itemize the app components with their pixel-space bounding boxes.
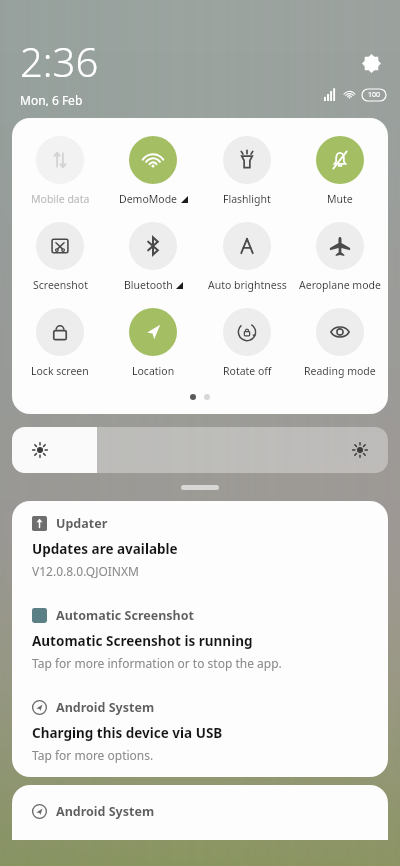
staticText: Mobile data — [31, 192, 90, 206]
button[interactable]: Auto brightness — [202, 222, 292, 292]
staticText: Tap for more information or to stop the … — [32, 655, 282, 671]
button[interactable]: Mobile data — [15, 136, 105, 206]
staticText: Updater — [56, 515, 108, 532]
button[interactable]: Location — [108, 308, 198, 378]
staticText: Reading mode — [304, 364, 376, 378]
button[interactable]: Android System — [12, 685, 388, 777]
staticText: Android System — [56, 699, 155, 716]
staticText: Lock screen — [31, 364, 89, 378]
button[interactable]: Mute — [295, 136, 385, 206]
button[interactable]: Automatic Screenshot — [12, 593, 388, 685]
button[interactable]: Lock screen — [15, 308, 105, 378]
staticText: Rotate off — [223, 364, 272, 378]
staticText: V12.0.8.0.QJOINXM — [32, 563, 139, 579]
button[interactable]: Flashlight — [202, 136, 292, 206]
button[interactable]: Android System — [12, 785, 388, 840]
staticText: Location — [132, 364, 175, 378]
staticText: Tap for more options. — [32, 747, 154, 763]
staticText: Android System — [56, 803, 155, 820]
staticText: Mute — [327, 192, 353, 206]
staticText: Mon, 6 Feb — [20, 92, 83, 106]
button[interactable]: Settings — [358, 50, 384, 76]
button[interactable]: Bluetooth — [108, 222, 198, 292]
staticText: Bluetooth — [124, 278, 173, 292]
staticText: Automatic Screenshot is running — [32, 632, 253, 650]
staticText: Aeroplane mode — [299, 278, 381, 292]
staticText: Automatic Screenshot — [56, 607, 194, 624]
button[interactable]: Screenshot — [15, 222, 105, 292]
staticText: 2:36 — [20, 34, 99, 88]
button[interactable]: Updater — [12, 501, 388, 593]
staticText: Flashlight — [223, 192, 271, 206]
staticText: Screenshot — [33, 278, 88, 292]
button[interactable]: Brightness — [12, 427, 388, 473]
button[interactable]: Rotate off — [202, 308, 292, 378]
button[interactable]: DemoMode — [108, 136, 198, 206]
button[interactable]: Reading mode — [295, 308, 385, 378]
staticText: Charging this device via USB — [32, 724, 223, 742]
button[interactable]: Aeroplane mode — [295, 222, 385, 292]
staticText: Updates are available — [32, 540, 178, 558]
staticText: 100 — [368, 90, 381, 100]
staticText: Auto brightness — [208, 278, 287, 292]
staticText: DemoMode — [119, 192, 178, 206]
